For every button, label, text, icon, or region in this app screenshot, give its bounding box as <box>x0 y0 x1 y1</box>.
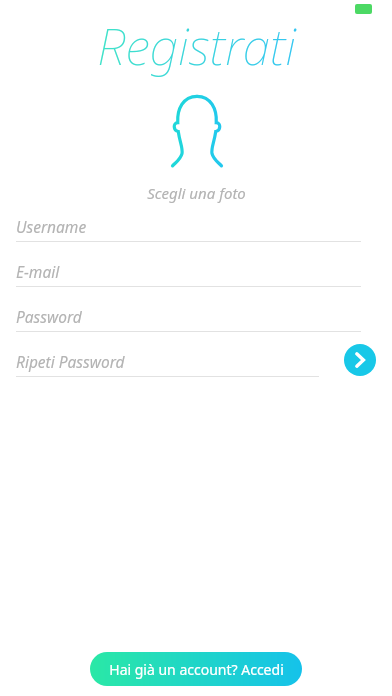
staticText: Scegli una foto <box>147 183 246 203</box>
staticText: E-mail <box>16 261 60 282</box>
button[interactable]: Scegli una foto <box>172 93 222 167</box>
staticText: Hai già un account? Accedi <box>109 660 284 679</box>
staticText: Username <box>16 216 87 237</box>
button[interactable]: Hai già un account? Accedi <box>90 652 302 686</box>
button[interactable]: Ripeti Password <box>0 351 392 377</box>
staticText: Ripeti Password <box>16 351 125 372</box>
button[interactable]: Password <box>0 306 392 332</box>
staticText: Registrati <box>97 12 296 80</box>
button[interactable]: Avanti <box>344 344 376 376</box>
button[interactable]: E-mail <box>0 261 392 287</box>
button[interactable]: Username <box>0 216 392 242</box>
staticText: Password <box>16 306 82 327</box>
